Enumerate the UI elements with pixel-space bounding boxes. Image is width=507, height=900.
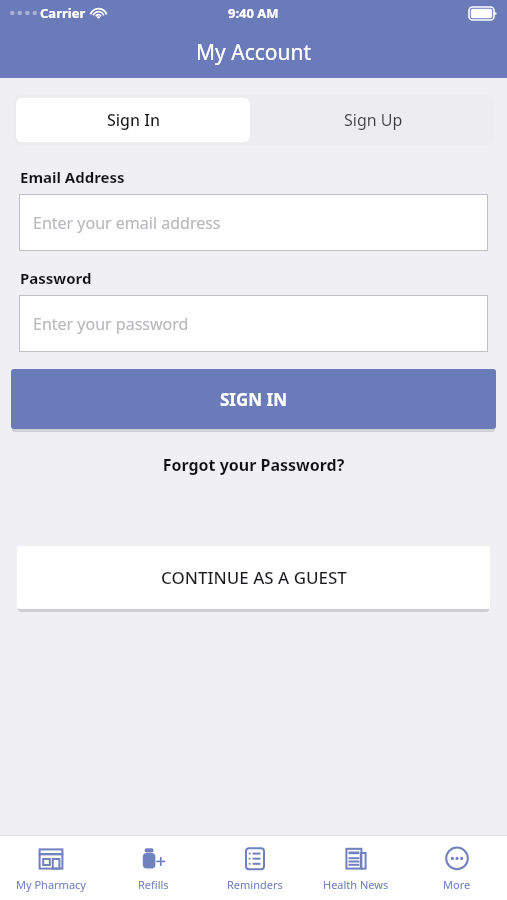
button[interactable]: CONTINUE AS A GUEST (17, 546, 490, 609)
staticText: Sign In (107, 109, 160, 131)
other: Health News (341, 844, 371, 874)
button[interactable]: Health News (305, 836, 406, 900)
staticText: My Pharmacy (16, 877, 86, 892)
button[interactable]: Forgot your Password? (0, 454, 507, 476)
button[interactable]: My Pharmacy (0, 836, 102, 900)
staticText: Reminders (227, 877, 283, 892)
staticText: Enter your email address (33, 212, 221, 234)
staticText: 9:40 AM (228, 4, 279, 22)
staticText: Email Address (20, 167, 125, 187)
other: Reminders (240, 844, 270, 874)
button[interactable]: Refills (102, 836, 204, 900)
button[interactable]: More (406, 836, 507, 900)
staticText: Refills (138, 877, 169, 892)
button[interactable]: Reminders (204, 836, 305, 900)
button[interactable]: Sign Up (253, 95, 494, 145)
staticText: Password (20, 268, 92, 288)
staticText: CONTINUE AS A GUEST (161, 566, 347, 589)
staticText: Health News (323, 877, 389, 892)
staticText: Enter your password (33, 313, 189, 335)
other: My Pharmacy (36, 844, 66, 874)
staticText: SIGN IN (220, 388, 287, 411)
staticText: More (443, 877, 471, 892)
other: Refills (138, 844, 168, 874)
staticText: My Account (196, 38, 312, 67)
other: More (442, 844, 472, 874)
button[interactable]: Sign In (16, 98, 250, 142)
staticText: Carrier (40, 4, 86, 22)
button[interactable]: SIGN IN (11, 369, 496, 429)
staticText: Sign Up (344, 109, 403, 131)
button[interactable]: Enter your password (19, 295, 488, 352)
button[interactable]: Enter your email address (19, 194, 488, 251)
